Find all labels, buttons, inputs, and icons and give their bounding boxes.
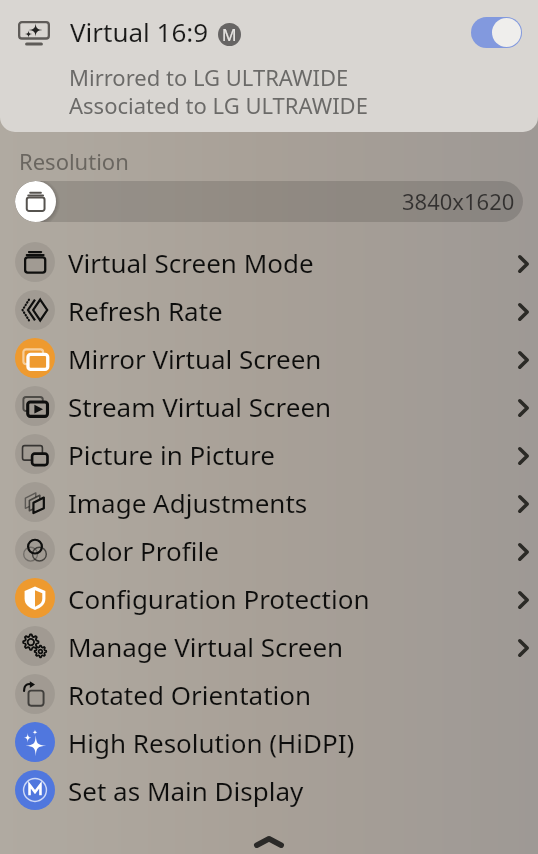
staticText: Mirrored to LG ULTRAWIDE [69, 62, 349, 92]
staticText: Refresh Rate [68, 293, 223, 328]
staticText: Virtual Screen Mode [68, 245, 314, 280]
button[interactable]: Manage Virtual Screen [0, 622, 538, 670]
staticText: Mirror Virtual Screen [68, 341, 322, 376]
button[interactable]: Virtual Screen Mode [0, 238, 538, 286]
button[interactable]: Stream Virtual Screen [0, 382, 538, 430]
staticText: Image Adjustments [68, 485, 308, 520]
staticText: 3840x1620 [402, 186, 515, 216]
staticText: Resolution [19, 146, 129, 176]
staticText: Associated to LG ULTRAWIDE [69, 90, 368, 120]
button[interactable]: Refresh Rate [0, 286, 538, 334]
staticText: Manage Virtual Screen [68, 629, 344, 664]
staticText: Configuration Protection [68, 581, 370, 616]
button[interactable]: Rotated Orientation [0, 670, 538, 718]
staticText: Picture in Picture [68, 437, 275, 472]
staticText: Set as Main Display [68, 773, 304, 808]
button[interactable]: Color Profile [0, 526, 538, 574]
button[interactable]: Mirror Virtual Screen [0, 334, 538, 382]
button[interactable]: Set as Main Display [0, 766, 538, 814]
button[interactable]: High Resolution (HiDPI) [0, 718, 538, 766]
button[interactable]: Image Adjustments [0, 478, 538, 526]
staticText: High Resolution (HiDPI) [68, 725, 355, 760]
staticText: Virtual 16:9 [70, 14, 209, 49]
button[interactable]: Configuration Protection [0, 574, 538, 622]
staticText: M [222, 24, 237, 46]
button[interactable]: Collapse [243, 830, 295, 854]
button[interactable]: Picture in Picture [0, 430, 538, 478]
button[interactable]: 3840x1620 [15, 181, 523, 222]
staticText: Rotated Orientation [68, 677, 312, 712]
button[interactable]: Enable display [471, 17, 522, 48]
staticText: Stream Virtual Screen [68, 389, 332, 424]
staticText: Color Profile [68, 533, 219, 568]
